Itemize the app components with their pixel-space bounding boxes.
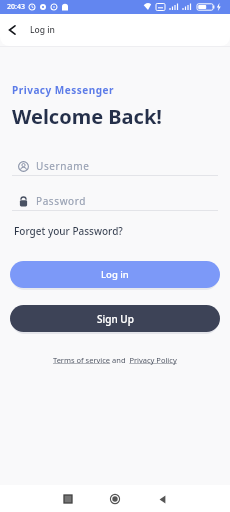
- button[interactable]: Forget your Password?: [14, 224, 123, 238]
- staticText: Privacy Messenger: [12, 83, 115, 97]
- staticText: Sign Up: [97, 312, 134, 326]
- staticText: Username: [36, 159, 90, 173]
- staticText: Welcome Back!: [12, 103, 162, 130]
- button[interactable]: Log in: [10, 261, 220, 288]
- button[interactable]: [150, 487, 174, 511]
- staticText: 20:43: [7, 2, 25, 12]
- button[interactable]: Password: [18, 194, 87, 208]
- staticText: Password: [36, 194, 87, 208]
- button[interactable]: [4, 22, 20, 38]
- button[interactable]: Terms of service and Privacy Policy: [53, 355, 177, 365]
- button[interactable]: [56, 487, 80, 511]
- button[interactable]: [103, 487, 127, 511]
- button[interactable]: Sign Up: [10, 305, 220, 332]
- staticText: Log in: [30, 24, 55, 36]
- staticText: Log in: [101, 268, 129, 281]
- button[interactable]: Username: [18, 159, 90, 173]
